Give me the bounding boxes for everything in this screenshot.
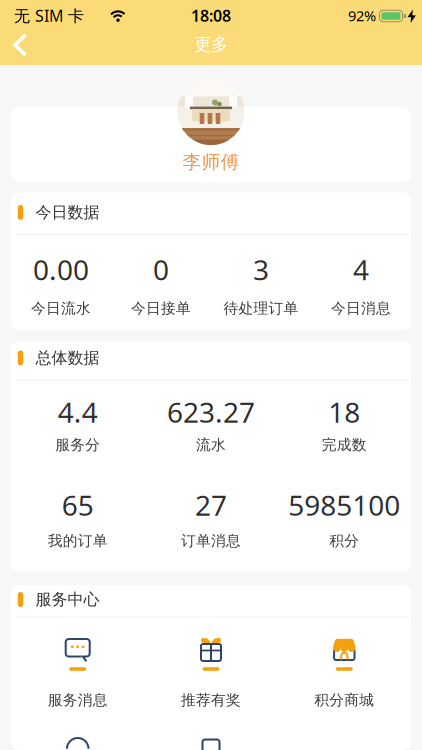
staticText: 订单消息 (181, 532, 241, 550)
staticText: 今日数据 (36, 203, 100, 222)
staticText: 65 (62, 486, 94, 524)
staticText: 623.27 (167, 393, 255, 431)
staticText: 18 (328, 393, 360, 431)
staticText: 92% (348, 6, 376, 25)
staticText: 0 (153, 251, 169, 288)
button[interactable] (181, 737, 241, 750)
staticText: 完成数 (322, 436, 367, 454)
staticText: 今日接单 (131, 299, 191, 317)
staticText: 待处理订单 (223, 299, 298, 317)
button[interactable] (48, 737, 108, 750)
staticText: 积分 (329, 532, 359, 550)
staticText: 服务分 (55, 436, 100, 454)
staticText: 我的订单 (48, 532, 108, 550)
staticText: 18:08 (191, 5, 231, 26)
staticText: 今日消息 (331, 299, 391, 317)
staticText: 无 SIM 卡 (14, 5, 84, 26)
button[interactable]: 李师傅 (11, 78, 411, 182)
button[interactable]: 推荐有奖 (156, 622, 266, 714)
staticText: 5985100 (288, 486, 400, 524)
staticText: 4 (353, 251, 369, 288)
staticText: 0.00 (33, 251, 89, 288)
staticText: 流水 (196, 436, 226, 454)
staticText: 服务中心 (36, 590, 100, 609)
staticText: 4.4 (58, 393, 98, 431)
staticText: 3 (253, 251, 269, 288)
staticText: 总体数据 (36, 348, 100, 368)
staticText: 27 (195, 486, 227, 524)
staticText: 积分商城 (314, 691, 374, 709)
button[interactable] (0, 24, 44, 66)
staticText: 李师傅 (182, 150, 239, 173)
staticText: 更多 (194, 34, 228, 55)
button[interactable]: 积分商城 (289, 622, 399, 714)
staticText: 服务消息 (48, 691, 108, 709)
button[interactable]: 服务消息 (23, 622, 133, 714)
staticText: 今日流水 (31, 299, 91, 317)
staticText: 推荐有奖 (181, 691, 241, 709)
